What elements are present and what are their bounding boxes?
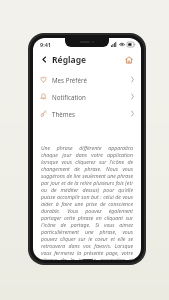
button[interactable]: Back (39, 54, 50, 65)
button[interactable]: Home (123, 54, 135, 66)
staticText: Mes Préféré (52, 76, 87, 84)
staticText: Réglage (52, 54, 87, 66)
staticText: 9:41 (40, 41, 51, 48)
button[interactable]: Thèmes (33, 105, 141, 122)
button[interactable]: Notification (33, 88, 141, 105)
staticText: Notification (52, 93, 86, 101)
button[interactable]: Mes Préféré (33, 71, 141, 88)
staticText: Une phrase différente apparaitra chaque … (41, 144, 133, 260)
staticText: Thèmes (52, 110, 75, 118)
